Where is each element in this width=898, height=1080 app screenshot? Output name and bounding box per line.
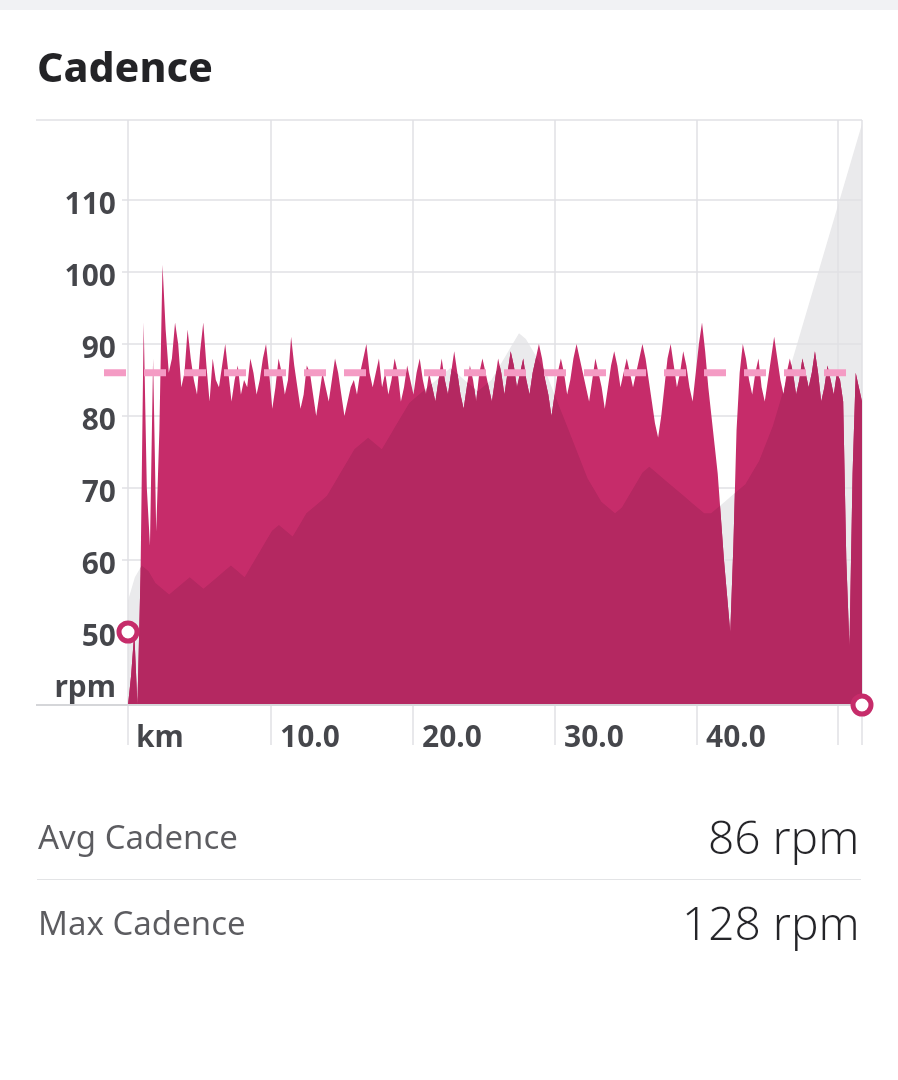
staticText: 40.0: [706, 715, 766, 752]
staticText: Cadence: [37, 38, 213, 94]
staticText: 80: [0, 398, 116, 439]
staticText: 100: [0, 254, 116, 295]
staticText: 128 rpm: [682, 891, 860, 954]
button[interactable]: Avg Cadence: [0, 794, 898, 879]
staticText: 86 rpm: [708, 805, 860, 868]
staticText: km: [136, 715, 184, 752]
button[interactable]: Cadence chart: [0, 112, 898, 752]
staticText: 50: [0, 614, 116, 655]
button[interactable]: Max Cadence: [0, 880, 898, 965]
staticText: 90: [0, 326, 116, 367]
staticText: 70: [0, 470, 116, 511]
staticText: Max Cadence: [38, 900, 246, 945]
staticText: 60: [0, 542, 116, 583]
staticText: 10.0: [280, 715, 340, 752]
staticText: 30.0: [564, 715, 624, 752]
staticText: 110: [0, 182, 116, 223]
staticText: Avg Cadence: [38, 814, 238, 859]
staticText: rpm: [0, 665, 116, 706]
staticText: 20.0: [422, 715, 482, 752]
